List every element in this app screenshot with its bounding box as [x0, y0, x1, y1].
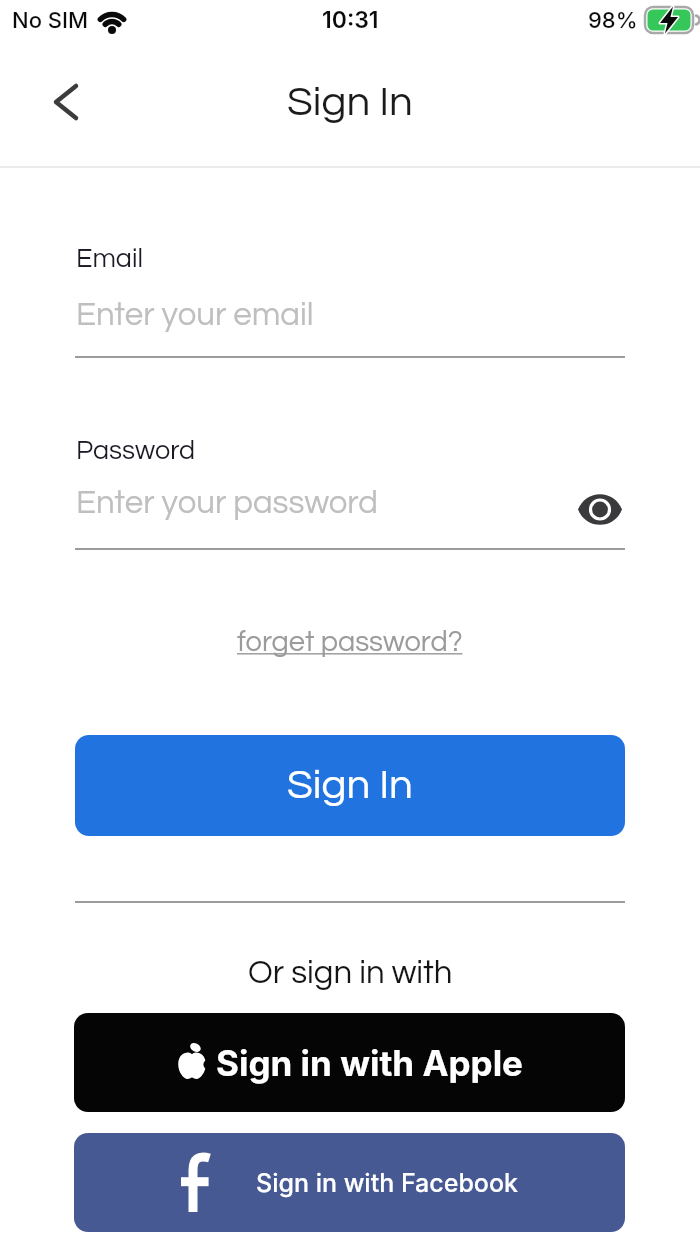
- staticText: Enter your email: [76, 298, 314, 332]
- staticText: Sign In: [287, 764, 413, 807]
- button[interactable]: forget password?: [237, 627, 463, 657]
- button[interactable]: Sign in with Facebook: [74, 1133, 625, 1232]
- button[interactable]: [38, 72, 94, 132]
- staticText: Sign in with Apple: [216, 1042, 523, 1084]
- staticText: Sign in with Facebook: [256, 1168, 519, 1198]
- button[interactable]: Sign in with Apple: [74, 1013, 625, 1112]
- button[interactable]: [578, 493, 622, 526]
- staticText: 10:31: [322, 6, 379, 34]
- staticText: 98%: [588, 7, 638, 34]
- staticText: No SIM: [12, 7, 89, 34]
- staticText: Or sign in with: [248, 956, 453, 990]
- staticText: Email: [76, 245, 143, 273]
- staticText: Sign In: [287, 81, 413, 124]
- staticText: Password: [76, 437, 196, 465]
- button[interactable]: Sign In: [75, 735, 625, 836]
- staticText: Enter your password: [76, 486, 378, 520]
